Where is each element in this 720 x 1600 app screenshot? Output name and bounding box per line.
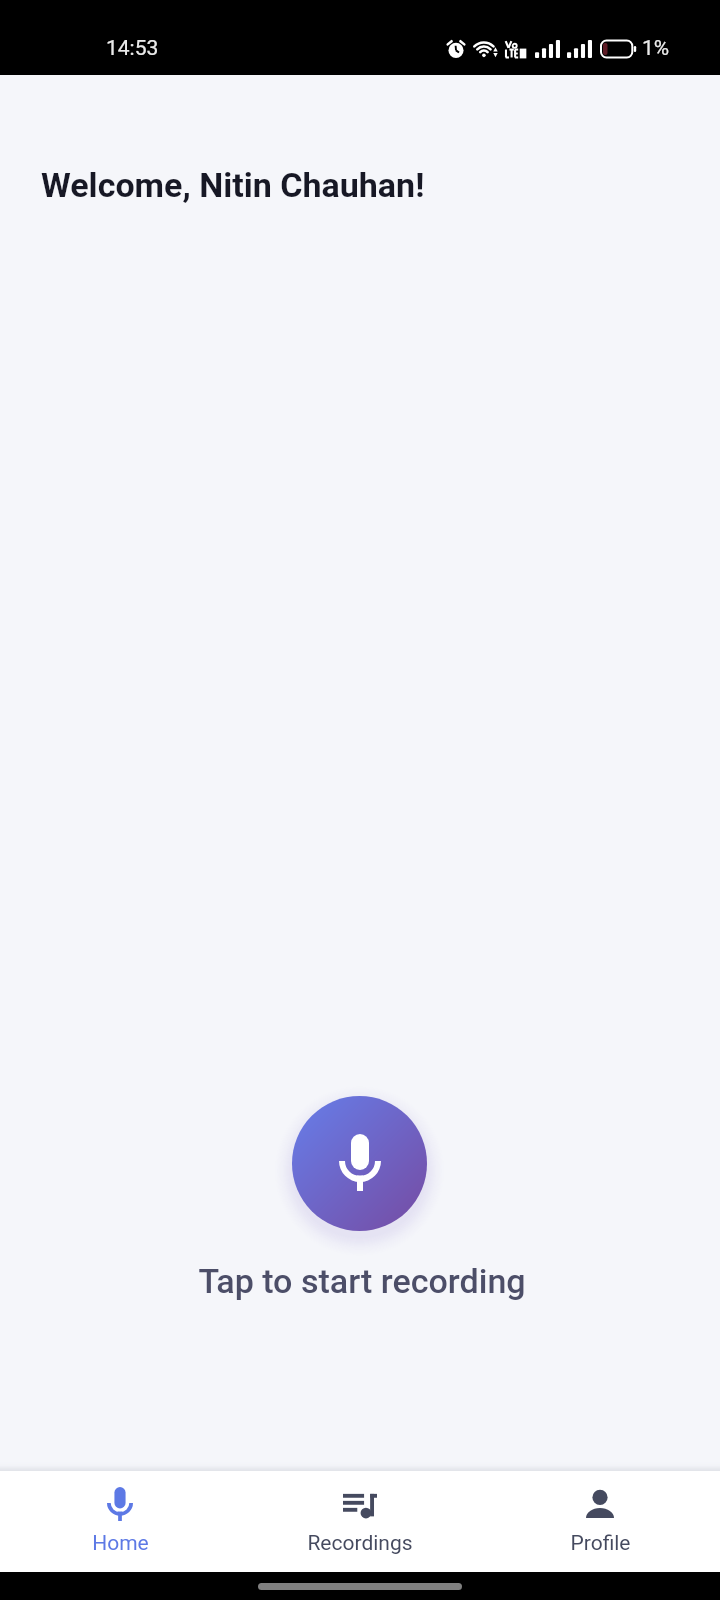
button[interactable]: Profile [480,1471,720,1572]
staticText: Home [92,1531,149,1556]
staticText: Tap to start recording [2,1261,720,1301]
staticText: Welcome, Nitin Chauhan! [41,165,425,205]
staticText: 1% [642,36,670,61]
button[interactable]: Home [0,1471,240,1572]
staticText: 14:53 [106,36,159,61]
button[interactable]: Recordings [240,1471,480,1572]
button[interactable]: Start recording [292,1096,427,1231]
staticText: Profile [570,1531,631,1556]
staticText: Recordings [307,1531,413,1556]
